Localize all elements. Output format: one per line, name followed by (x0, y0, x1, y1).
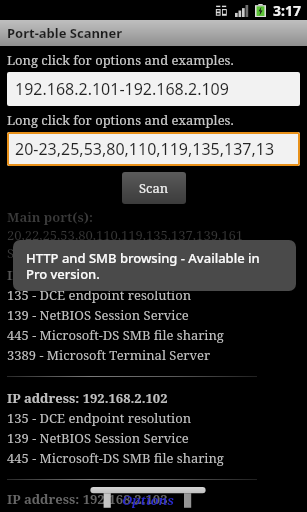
staticText: 445 - Microsoft-DS SMB file sharing (7, 326, 224, 344)
staticText: IP address: 192.168.2.101 (7, 266, 168, 284)
button[interactable]: Scan (122, 172, 186, 204)
staticText: 20-23,25,53,80,110,119,135,137,13 (15, 138, 275, 160)
staticText: 139 - NetBIOS Session Service (7, 429, 189, 447)
staticText: Long click for options and examples. (7, 111, 234, 129)
staticText: Scan (139, 179, 169, 197)
staticText: Port-able Scanner (7, 24, 122, 42)
staticText: Long click for options and examples. (7, 51, 234, 69)
staticText: IP address: 192.168.2.102 (7, 389, 168, 407)
staticText: HTTP and SMB browsing - Available in Pro… (26, 249, 283, 282)
staticText: 135 - DCE endpoint resolution (7, 286, 192, 304)
staticText: 3:17 (273, 1, 301, 20)
staticText: 135 - DCE endpoint resolution (7, 409, 192, 427)
staticText: Options (122, 491, 174, 509)
staticText: 192.168.2.101-192.168.2.109 (15, 78, 229, 100)
staticText: 445 - Microsoft-DS SMB file sharing (7, 449, 224, 467)
button[interactable]: 20-23,25,53,80,110,119,135,137,13 (7, 132, 300, 166)
staticText: Main port(s): (7, 208, 93, 226)
button[interactable]: Options (88, 482, 208, 510)
staticText: 20,22,25,53,80,110,119,135,137,139,161 (7, 226, 243, 244)
staticText: 139 - NetBIOS Session Service (7, 306, 189, 324)
staticText: IP address: 192.168.2.103 (7, 490, 168, 508)
staticText: 3389 - Microsoft Terminal Server (7, 346, 211, 364)
staticText: Scanning... (7, 244, 74, 262)
button[interactable]: 192.168.2.101-192.168.2.109 (7, 72, 300, 106)
